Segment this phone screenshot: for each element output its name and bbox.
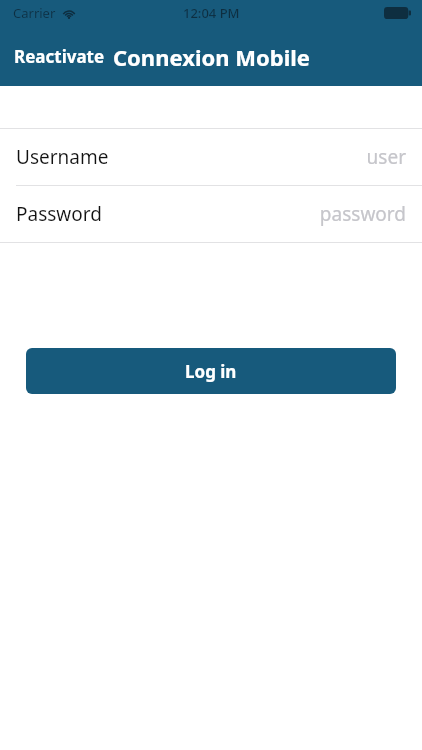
staticText: Connexion Mobile xyxy=(113,42,310,72)
staticText: user xyxy=(366,144,406,170)
button[interactable]: Password xyxy=(0,186,422,242)
staticText: Username xyxy=(16,144,109,170)
staticText: Reactivate xyxy=(14,45,105,68)
button[interactable]: Reactivate xyxy=(0,37,113,76)
staticText: password xyxy=(319,201,406,227)
staticText: Log in xyxy=(185,360,237,383)
button[interactable]: Log in xyxy=(26,348,396,394)
staticText: Carrier xyxy=(13,4,56,22)
staticText: 12:04 PM xyxy=(183,4,240,22)
button[interactable]: Username xyxy=(0,129,422,185)
staticText: Password xyxy=(16,201,102,227)
